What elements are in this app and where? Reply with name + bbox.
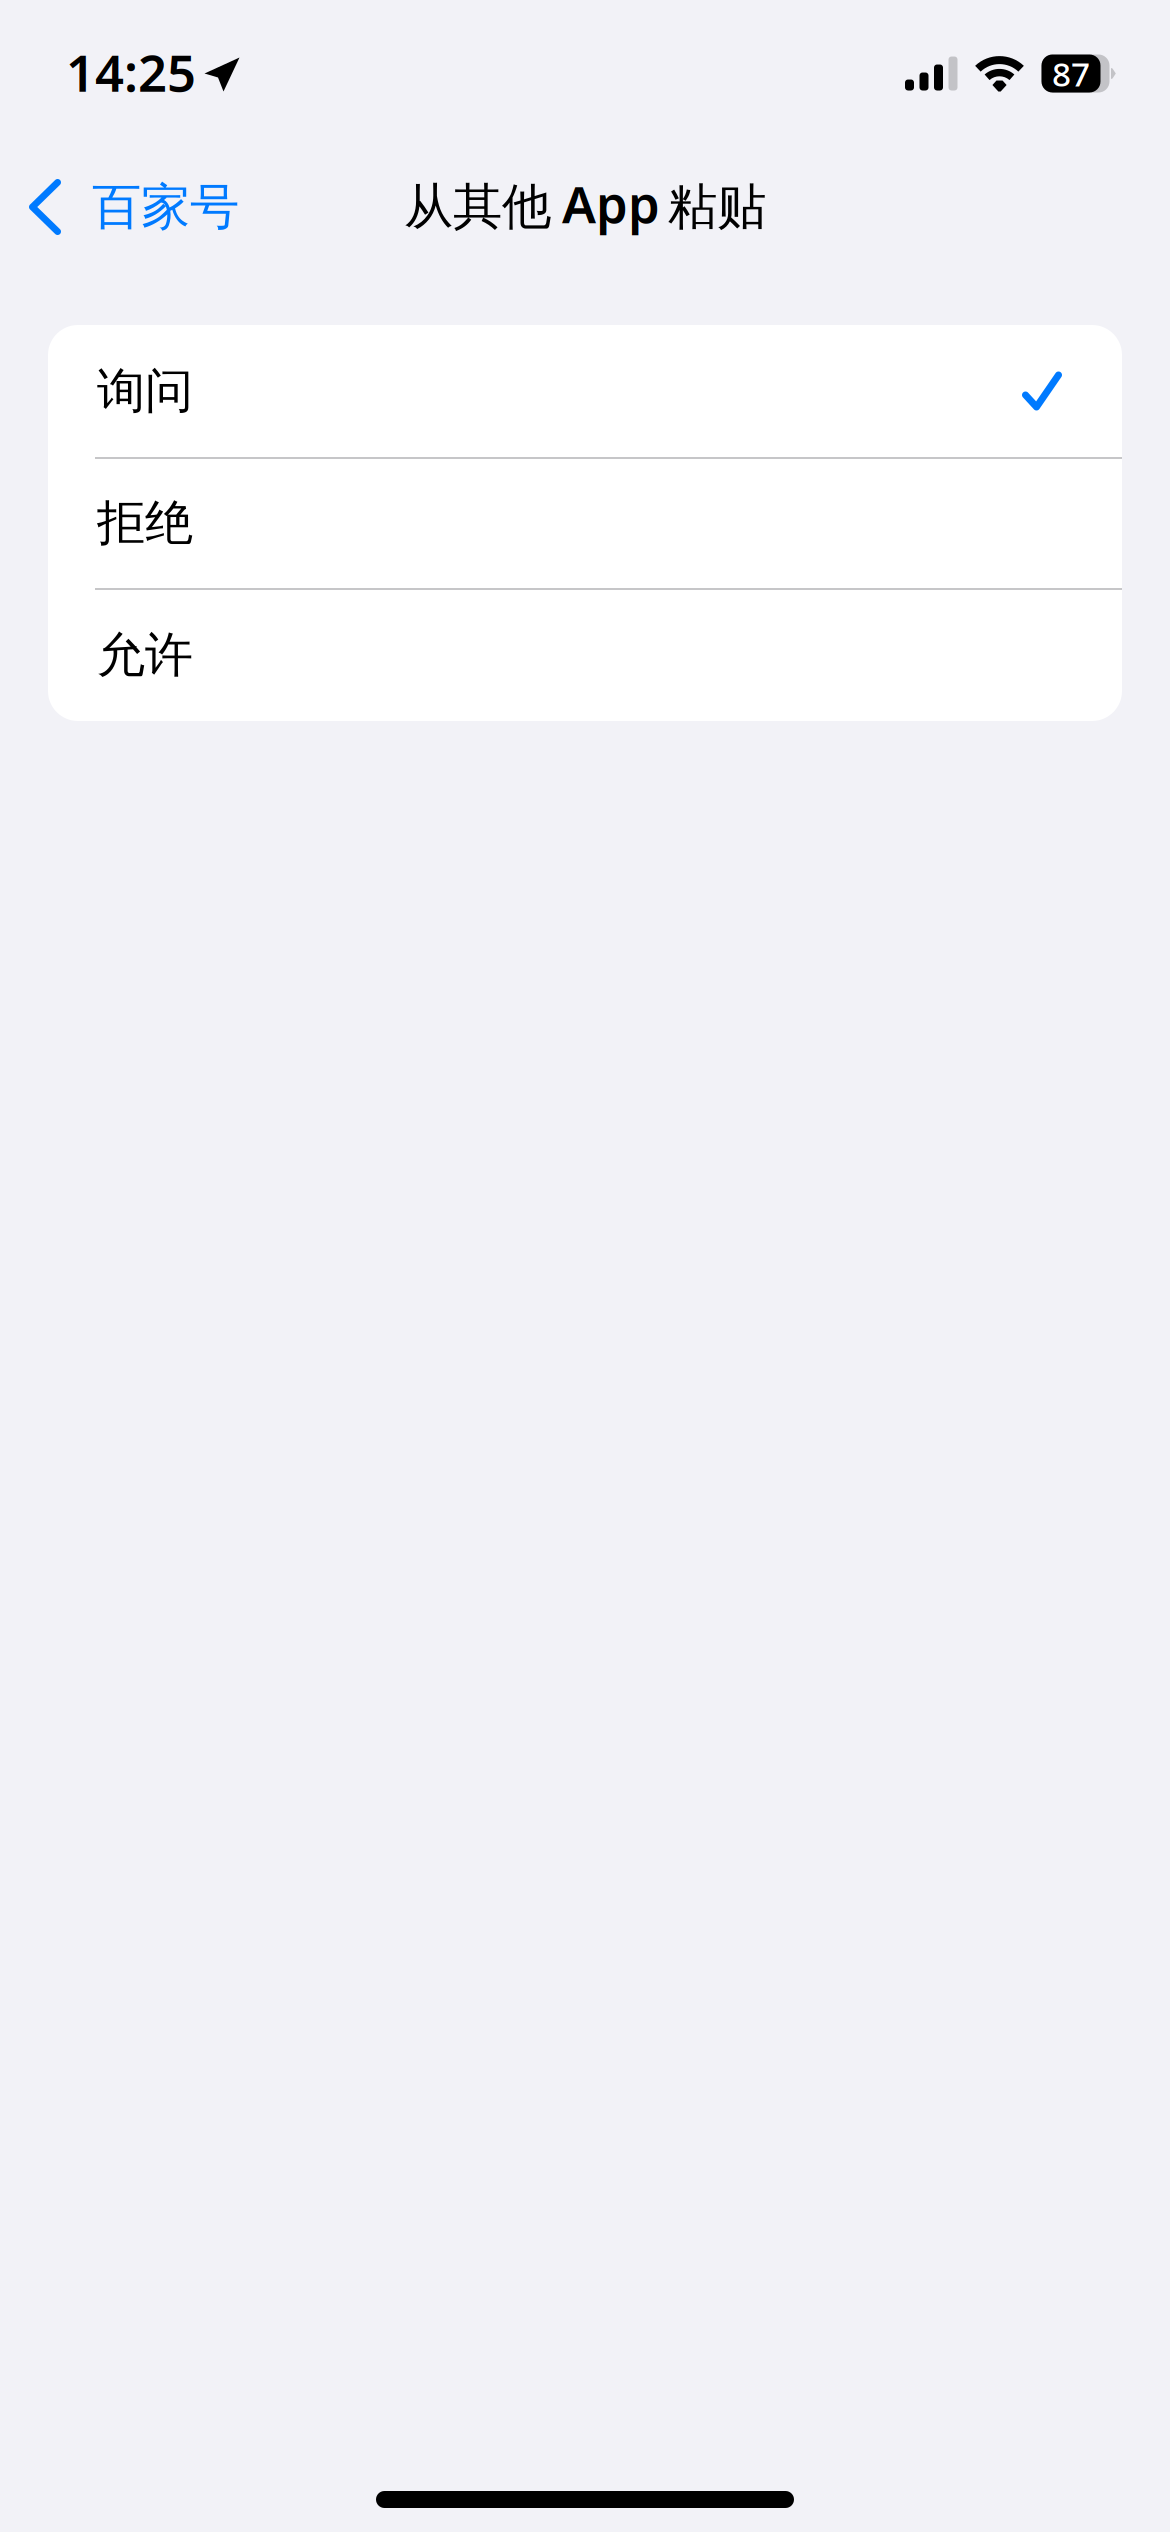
button[interactable]: 允许: [48, 589, 1122, 721]
staticText: 拒绝: [97, 493, 193, 552]
staticText: App: [562, 170, 660, 237]
button[interactable]: 询问: [48, 325, 1122, 457]
staticText: 询问: [97, 361, 193, 420]
staticText: 百家号: [92, 177, 239, 237]
button[interactable]: 拒绝: [48, 457, 1122, 589]
staticText: 14:25: [66, 38, 196, 106]
staticText: 允许: [97, 625, 193, 684]
staticText: 87: [1052, 51, 1090, 96]
staticText: 粘贴: [668, 176, 766, 237]
button[interactable]: 百家号: [0, 148, 263, 266]
staticText: 从其他: [404, 176, 551, 237]
